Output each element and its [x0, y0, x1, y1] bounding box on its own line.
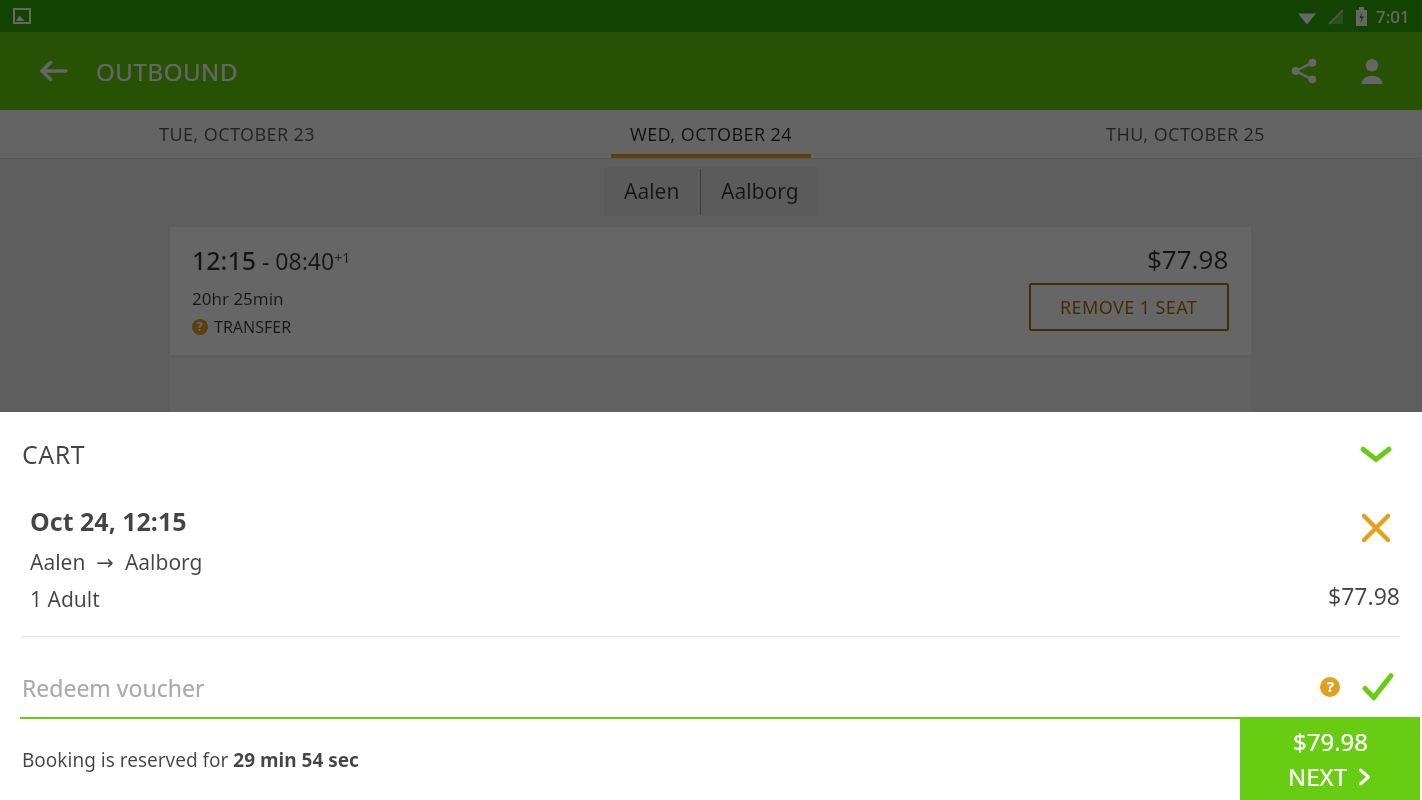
staticText: 1 Adult	[30, 585, 100, 614]
button[interactable]: WED, OCTOBER 24	[474, 110, 948, 158]
staticText: ?	[197, 319, 203, 335]
button[interactable]: Share	[1276, 43, 1332, 99]
button[interactable]: $79.98	[1240, 717, 1420, 800]
staticText: WED, OCTOBER 24	[630, 122, 792, 147]
staticText: NEXT	[1288, 760, 1347, 793]
staticText: TUE, OCTOBER 23	[159, 122, 315, 147]
staticText: 12:15 - 08:40+1	[192, 243, 351, 277]
button[interactable]: REMOVE 1 SEAT	[1029, 283, 1229, 331]
staticText: 20hr 25min	[192, 287, 284, 310]
button[interactable]: TUE, OCTOBER 23	[0, 110, 474, 158]
staticText: $77.98	[1147, 241, 1229, 276]
staticText: THU, OCTOBER 25	[1106, 122, 1265, 147]
button[interactable]: Apply voucher	[1356, 665, 1400, 709]
staticText: $79.98	[1293, 725, 1369, 758]
staticText: Aalborg	[721, 177, 799, 206]
staticText: REMOVE 1 SEAT	[1060, 295, 1198, 320]
button[interactable]: Back	[30, 47, 78, 95]
button[interactable]: Voucher help	[1312, 669, 1348, 705]
button[interactable]: Aalen	[624, 177, 680, 206]
button[interactable]: CART	[0, 412, 1422, 496]
button[interactable]: Aalborg	[721, 177, 799, 206]
staticText: OUTBOUND	[96, 55, 239, 88]
staticText: ?	[1327, 677, 1334, 697]
button[interactable]: Collapse cart	[1352, 430, 1400, 478]
staticText: Oct 24, 12:15	[30, 504, 187, 538]
staticText: Aalen → Aalborg	[30, 548, 203, 577]
button[interactable]: 12:15 - 08:40+1	[170, 227, 1251, 355]
staticText: Booking is reserved for 29 min 54 sec	[22, 747, 359, 773]
staticText: Aalen	[624, 177, 680, 206]
staticText: TRANSFER	[214, 316, 292, 338]
button[interactable]: Redeem voucher	[22, 672, 205, 703]
button[interactable]: THU, OCTOBER 25	[948, 110, 1422, 158]
button[interactable]	[170, 358, 1251, 458]
button[interactable]: Account	[1344, 43, 1400, 99]
staticText: $77.98	[1328, 580, 1400, 611]
staticText: CART	[22, 437, 86, 471]
staticText: 7:01	[1376, 5, 1410, 28]
button[interactable]: Remove item	[1352, 504, 1400, 552]
